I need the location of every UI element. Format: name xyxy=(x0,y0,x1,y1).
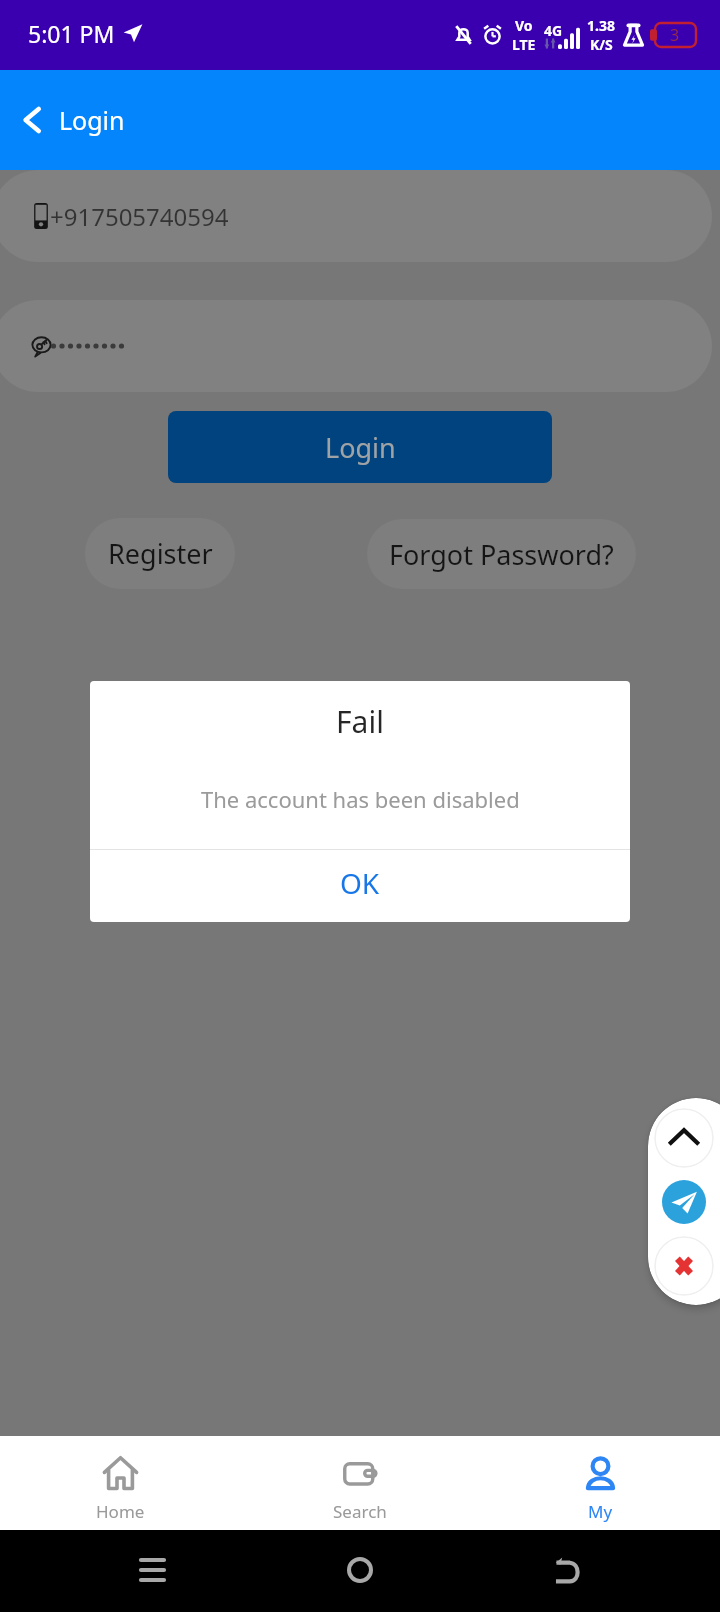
staticText: Search xyxy=(333,1500,387,1523)
button[interactable]: +917505740594 xyxy=(0,170,712,262)
button[interactable]: Home xyxy=(334,1544,386,1596)
staticText: Login xyxy=(325,429,396,466)
staticText: LTE xyxy=(512,35,536,54)
button[interactable]: Recents xyxy=(126,1544,178,1596)
button[interactable]: Telegram xyxy=(654,1172,714,1232)
staticText: Fail xyxy=(336,701,384,742)
button[interactable]: Back xyxy=(541,1544,593,1596)
button[interactable]: Back xyxy=(10,98,54,142)
button[interactable]: Forgot Password? xyxy=(367,519,636,589)
staticText: Forgot Password? xyxy=(389,536,614,573)
staticText: 3 xyxy=(670,24,680,46)
staticText: +917505740594 xyxy=(50,200,229,233)
staticText: Login xyxy=(59,103,125,137)
staticText: OK xyxy=(340,864,380,902)
button[interactable]: Home xyxy=(0,1436,240,1530)
button[interactable]: Scroll to top xyxy=(654,1108,714,1168)
button[interactable]: Close xyxy=(654,1236,714,1296)
staticText: 5:01 PM xyxy=(28,18,115,49)
button[interactable]: Login xyxy=(168,411,552,483)
staticText: Register xyxy=(108,535,213,572)
button[interactable]: Search xyxy=(240,1436,480,1530)
staticText: My xyxy=(588,1500,613,1523)
button[interactable]: Register xyxy=(85,518,235,589)
staticText: Home xyxy=(96,1500,145,1523)
button[interactable] xyxy=(0,300,712,392)
staticText: The account has been disabled xyxy=(201,784,520,814)
button[interactable]: My xyxy=(480,1436,720,1530)
staticText: Vo xyxy=(515,16,533,35)
staticText: K/S xyxy=(590,35,613,54)
staticText: 4G xyxy=(544,21,563,40)
staticText: 1.38 xyxy=(587,16,615,35)
button[interactable]: OK xyxy=(90,850,630,922)
